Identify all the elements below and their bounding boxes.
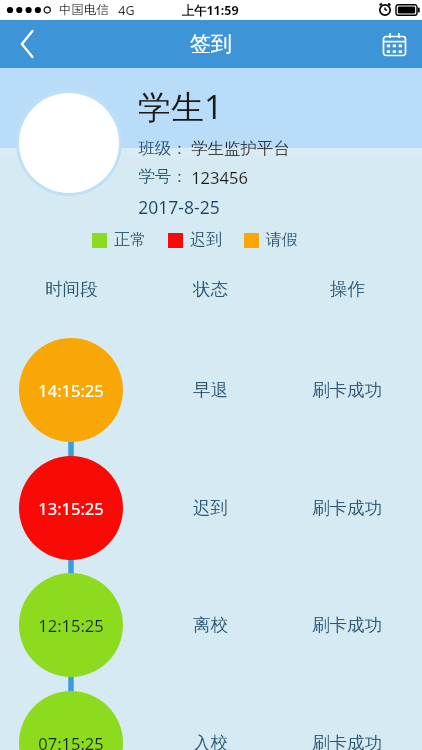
button[interactable]: Calendar bbox=[366, 20, 422, 68]
staticText: 离校 bbox=[193, 614, 228, 636]
button[interactable]: 早退 bbox=[155, 376, 265, 404]
button[interactable]: 14:15:25 bbox=[19, 338, 123, 442]
staticText: 迟到 bbox=[190, 230, 222, 250]
staticText: 迟到 bbox=[193, 497, 228, 519]
button[interactable]: 07:15:25 bbox=[19, 691, 123, 750]
staticText: 刷卡成功 bbox=[312, 379, 382, 401]
staticText: 刷卡成功 bbox=[312, 732, 382, 750]
staticText: 4G bbox=[118, 2, 135, 19]
button[interactable]: 13:15:25 bbox=[19, 456, 123, 560]
staticText: 时间段 bbox=[45, 278, 98, 300]
staticText: 操作 bbox=[330, 278, 365, 300]
staticText: 07:15:25 bbox=[38, 732, 104, 750]
staticText: 学号： bbox=[138, 166, 188, 187]
staticText: 学生1 bbox=[138, 84, 223, 129]
button[interactable]: 刷卡成功 bbox=[292, 494, 402, 522]
staticText: 请假 bbox=[266, 230, 298, 250]
staticText: 学生监护平台 bbox=[191, 138, 290, 159]
button[interactable]: 12:15:25 bbox=[19, 573, 123, 677]
staticText: 14:15:25 bbox=[38, 379, 104, 401]
button[interactable]: 刷卡成功 bbox=[292, 611, 402, 639]
button[interactable]: 刷卡成功 bbox=[292, 729, 402, 750]
staticText: 入校 bbox=[193, 732, 228, 750]
staticText: 13:15:25 bbox=[38, 497, 104, 519]
staticText: 中国电信 bbox=[59, 2, 109, 18]
staticText: 刷卡成功 bbox=[312, 497, 382, 519]
staticText: 签到 bbox=[190, 31, 232, 57]
staticText: 早退 bbox=[193, 379, 228, 401]
staticText: 12:15:25 bbox=[38, 614, 104, 636]
button[interactable]: Back bbox=[0, 20, 52, 68]
staticText: 状态 bbox=[193, 278, 228, 300]
staticText: 班级： bbox=[138, 138, 188, 159]
button[interactable]: 离校 bbox=[155, 611, 265, 639]
button[interactable]: 迟到 bbox=[155, 494, 265, 522]
staticText: 上午11:59 bbox=[181, 2, 239, 19]
button[interactable]: 刷卡成功 bbox=[292, 376, 402, 404]
staticText: 123456 bbox=[191, 166, 248, 188]
staticText: 2017-8-25 bbox=[138, 195, 220, 219]
staticText: 刷卡成功 bbox=[312, 614, 382, 636]
button[interactable]: 入校 bbox=[155, 729, 265, 750]
staticText: 正常 bbox=[114, 230, 146, 250]
